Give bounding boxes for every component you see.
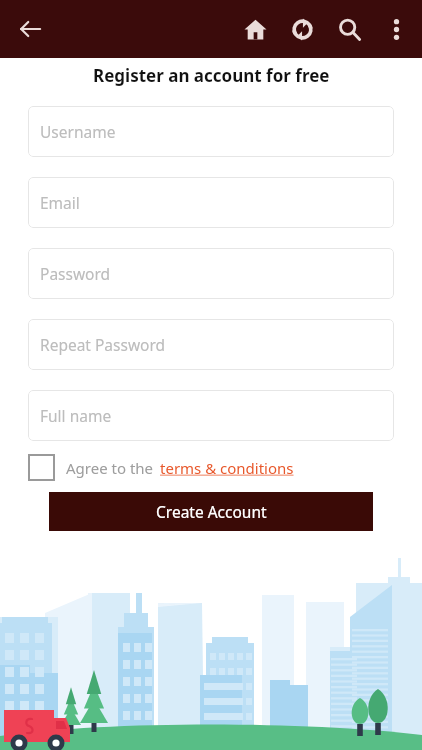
button[interactable]: Repeat Password — [28, 319, 394, 370]
button[interactable]: Username — [28, 106, 394, 157]
staticText: Create Account — [156, 501, 267, 522]
staticText: Repeat Password — [40, 334, 166, 355]
button[interactable]: Agree to the — [28, 454, 422, 481]
button[interactable]: More options — [373, 6, 420, 53]
button[interactable]: Password — [28, 248, 394, 299]
staticText: Password — [40, 263, 111, 284]
button[interactable]: Full name — [28, 390, 394, 441]
staticText: Username — [40, 121, 116, 142]
staticText: Full name — [40, 405, 112, 426]
button[interactable]: Email — [28, 177, 394, 228]
button[interactable]: Refresh — [279, 6, 326, 53]
button[interactable]: Search — [326, 6, 373, 53]
button[interactable]: terms & conditions — [160, 458, 294, 478]
staticText: Agree to the — [66, 458, 154, 478]
button[interactable]: Home — [232, 6, 279, 53]
button[interactable]: Back — [8, 7, 52, 51]
staticText: Email — [40, 192, 80, 213]
staticText: Register an account for free — [93, 64, 330, 87]
button[interactable]: Create Account — [49, 492, 373, 531]
